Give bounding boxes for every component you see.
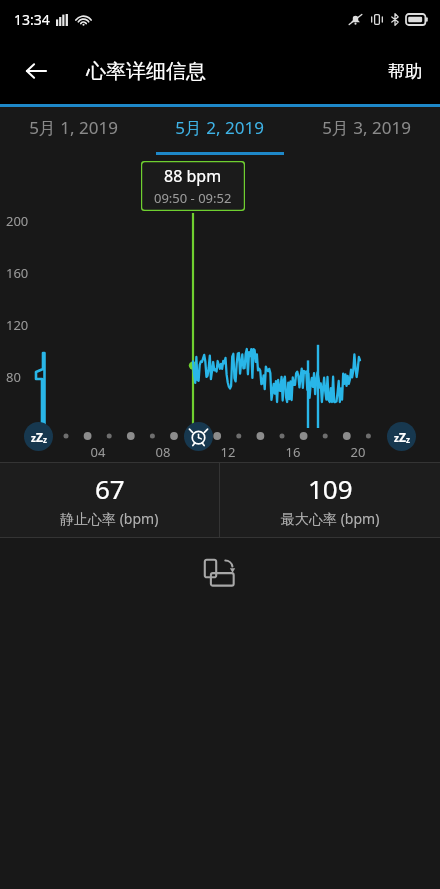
staticText: 109 <box>308 471 353 506</box>
staticText: 12 <box>217 443 239 461</box>
staticText: 心率详细信息 <box>86 59 206 84</box>
button[interactable]: 67 <box>0 463 219 537</box>
button[interactable]: 5月 2, 2019 <box>146 107 293 157</box>
staticText: 80 <box>6 368 21 386</box>
staticText: 最大心率 (bpm) <box>281 509 380 528</box>
staticText: z <box>43 434 47 445</box>
staticText: Z <box>399 429 406 445</box>
staticText: z <box>406 434 410 445</box>
staticText: 20 <box>347 443 369 461</box>
staticText: 88 bpm <box>164 165 222 187</box>
staticText: z <box>394 431 399 445</box>
button[interactable]: Rotate screen <box>192 547 248 603</box>
button[interactable]: 109 <box>220 463 440 537</box>
button[interactable]: 88 bpm <box>141 161 245 211</box>
staticText: 13:34 <box>14 10 50 29</box>
staticText: 5月 1, 2019 <box>29 116 118 139</box>
staticText: z <box>31 431 36 445</box>
staticText: 静止心率 (bpm) <box>60 509 159 528</box>
staticText: 帮助 <box>388 61 422 82</box>
staticText: 5月 3, 2019 <box>322 116 411 139</box>
button[interactable]: Sleep <box>24 422 53 451</box>
staticText: 08 <box>152 443 174 461</box>
staticText: 200 <box>6 212 29 230</box>
button[interactable]: Back <box>10 45 62 97</box>
button[interactable]: 5月 1, 2019 <box>0 107 146 157</box>
staticText: 5月 2, 2019 <box>175 116 264 139</box>
staticText: Z <box>36 429 43 445</box>
staticText: 160 <box>6 264 29 282</box>
staticText: 16 <box>282 443 304 461</box>
button[interactable]: Alarm <box>184 422 213 451</box>
staticText: 67 <box>95 471 125 506</box>
button[interactable]: Sleep <box>387 422 416 451</box>
button[interactable]: 帮助 <box>370 47 440 96</box>
staticText: 120 <box>6 316 29 334</box>
staticText: 04 <box>87 443 109 461</box>
button[interactable]: 5月 3, 2019 <box>293 107 440 157</box>
staticText: 09:50 - 09:52 <box>154 189 232 207</box>
